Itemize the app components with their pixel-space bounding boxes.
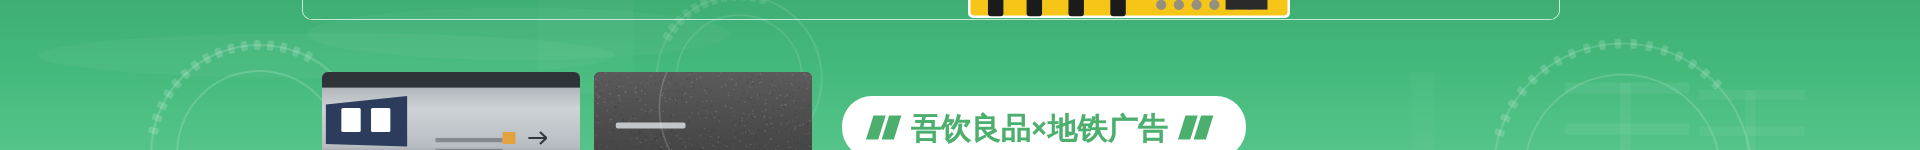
button[interactable]: Subway platform advertisement photo [594,72,812,150]
button[interactable]: 吾饮良品×地铁广告 [842,96,1246,150]
button[interactable]: Promotional card [302,0,1560,20]
button[interactable]: Comic advertisement [968,0,1290,18]
button[interactable]: Subway station advertisement photo [322,72,580,150]
staticText: 吾饮良品×地铁广告 [910,107,1168,148]
